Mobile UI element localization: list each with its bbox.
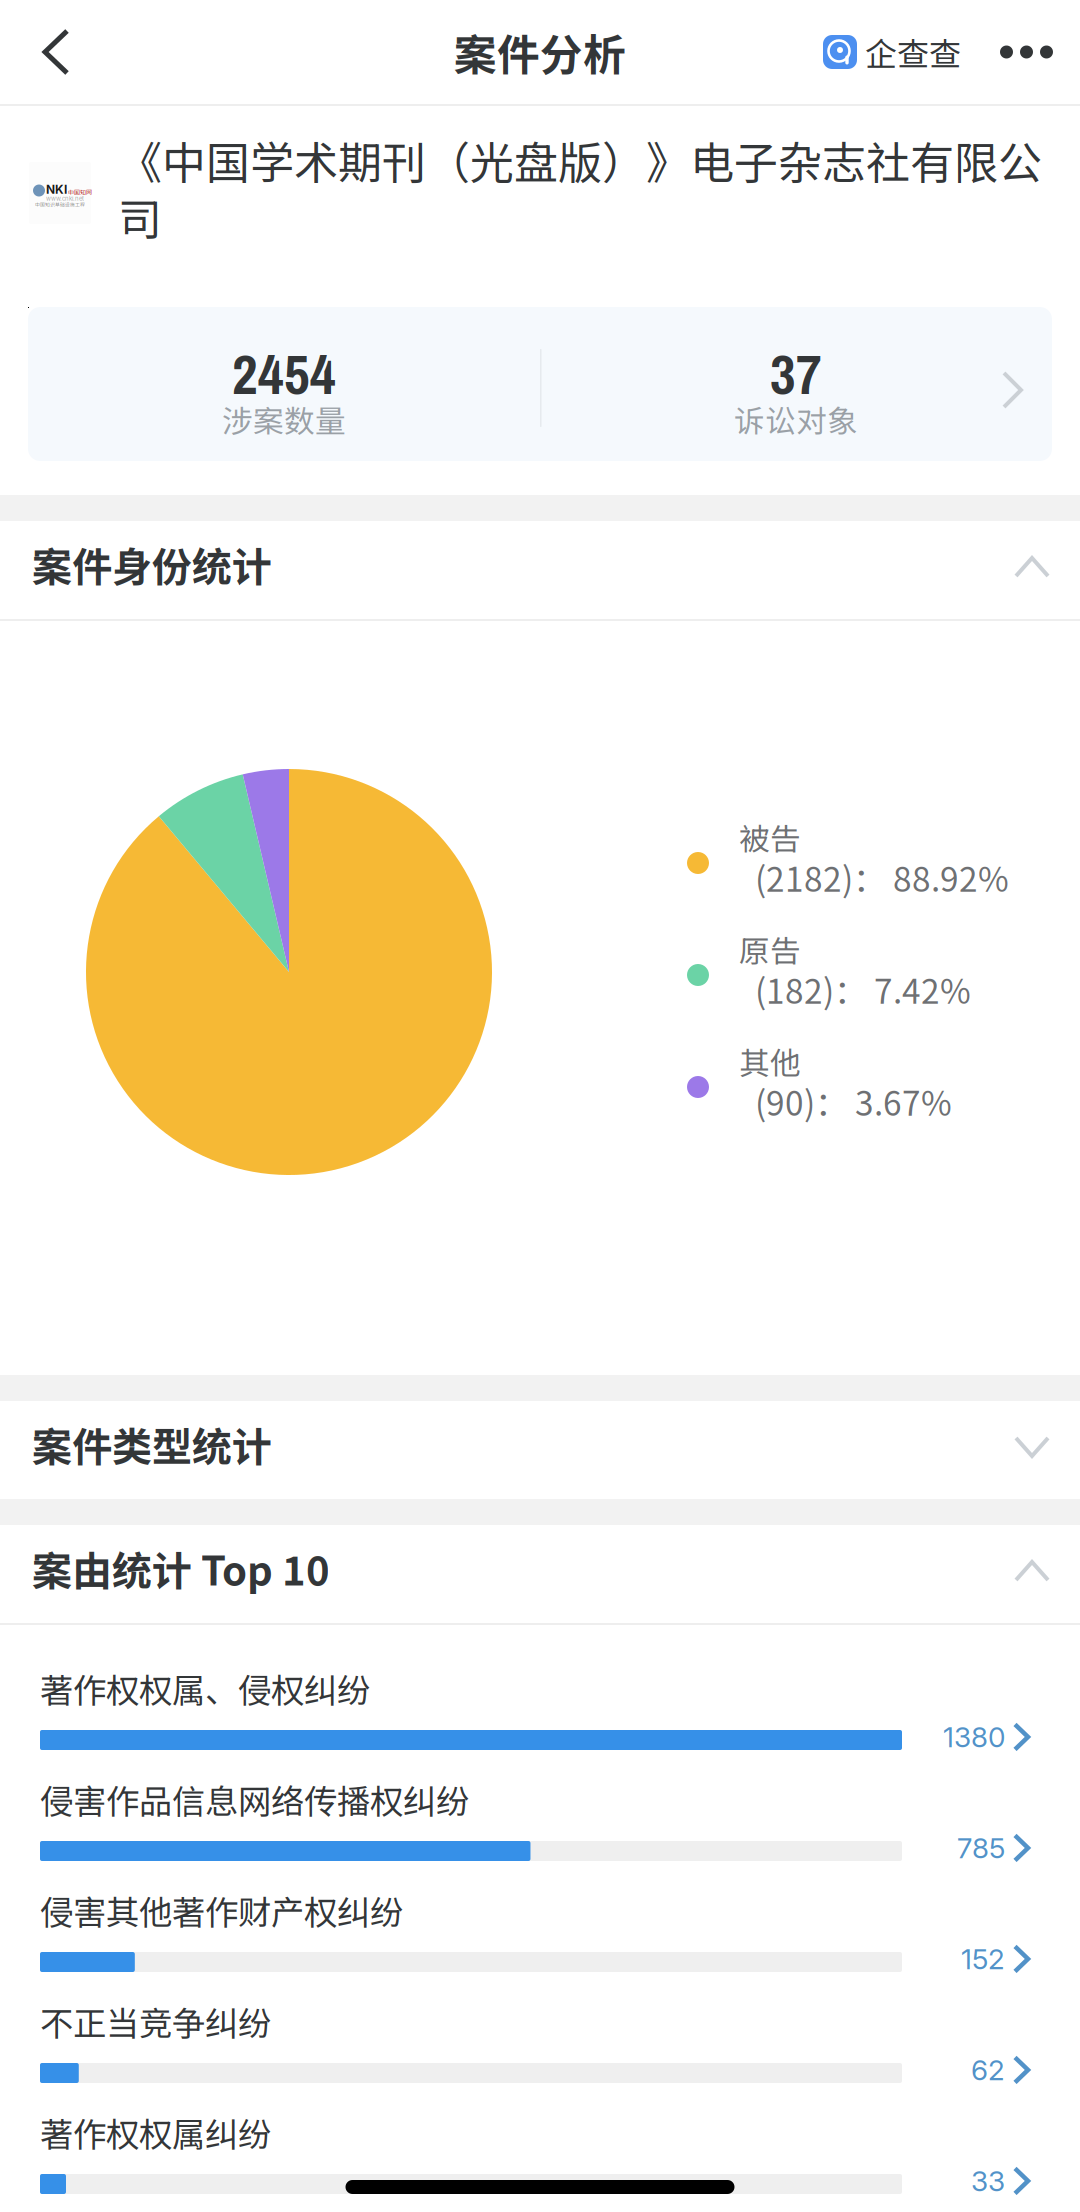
staticText: NKI bbox=[46, 182, 67, 196]
button[interactable]: NKI bbox=[0, 106, 1080, 307]
staticText: 被告 bbox=[739, 815, 801, 859]
button[interactable]: 案由统计 Top 10 bbox=[0, 1525, 1080, 1623]
staticText: 152 bbox=[961, 1942, 1005, 1976]
staticText: 涉案数量 bbox=[222, 397, 346, 441]
staticText: 著作权权属纠纷 bbox=[40, 2108, 271, 2156]
staticText: 著作权权属、侵权纠纷 bbox=[40, 1664, 370, 1712]
staticText: 企查查 bbox=[865, 29, 961, 75]
staticText: 诉讼对象 bbox=[734, 397, 858, 441]
button[interactable]: 侵害其他著作财产权纠纷 bbox=[0, 1879, 1080, 1990]
staticText: 案件分析 bbox=[454, 21, 626, 83]
staticText: (90)： 3.67% bbox=[755, 1077, 952, 1125]
staticText: 案件身份统计 bbox=[32, 535, 272, 593]
button[interactable]: 不正当竞争纠纷 bbox=[0, 1990, 1080, 2101]
button[interactable]: 案件类型统计 bbox=[0, 1401, 1080, 1499]
staticText: 不正当竞争纠纷 bbox=[40, 1997, 271, 2045]
staticText: 中国知网 bbox=[68, 188, 92, 196]
staticText: 原告 bbox=[739, 927, 801, 971]
button[interactable]: 返回 bbox=[0, 0, 101, 104]
staticText: 其他 bbox=[739, 1039, 801, 1083]
staticText: 33 bbox=[971, 2164, 1005, 2198]
staticText: www.cnki.net bbox=[46, 195, 84, 202]
staticText: 2454 bbox=[232, 336, 336, 411]
button[interactable]: 企查查 bbox=[823, 7, 961, 97]
staticText: (2182)： 88.92% bbox=[755, 853, 1009, 901]
staticText: 侵害其他著作财产权纠纷 bbox=[40, 1886, 403, 1934]
staticText: 785 bbox=[957, 1831, 1005, 1865]
button[interactable]: 2454 bbox=[0, 307, 1080, 495]
staticText: 司 bbox=[118, 185, 162, 248]
staticText: 1380 bbox=[943, 1720, 1005, 1754]
staticText: 37 bbox=[770, 336, 822, 411]
button[interactable]: 侵害作品信息网络传播权纠纷 bbox=[0, 1768, 1080, 1879]
staticText: (182)： 7.42% bbox=[755, 965, 971, 1013]
staticText: 中国知识基础设施工程 bbox=[35, 201, 85, 208]
button[interactable]: 案件身份统计 bbox=[0, 521, 1080, 619]
staticText: 案由统计 Top 10 bbox=[32, 1539, 330, 1597]
staticText: 案件类型统计 bbox=[32, 1415, 272, 1473]
button[interactable]: 著作权权属、侵权纠纷 bbox=[0, 1657, 1080, 1768]
button[interactable]: 更多 bbox=[961, 0, 1080, 104]
button[interactable]: 著作权权属纠纷 bbox=[0, 2101, 1080, 2212]
staticText: 《中国学术期刊（光盘版）》电子杂志社有限公 bbox=[118, 128, 1042, 192]
staticText: 62 bbox=[971, 2053, 1005, 2087]
staticText: 侵害作品信息网络传播权纠纷 bbox=[40, 1775, 469, 1823]
